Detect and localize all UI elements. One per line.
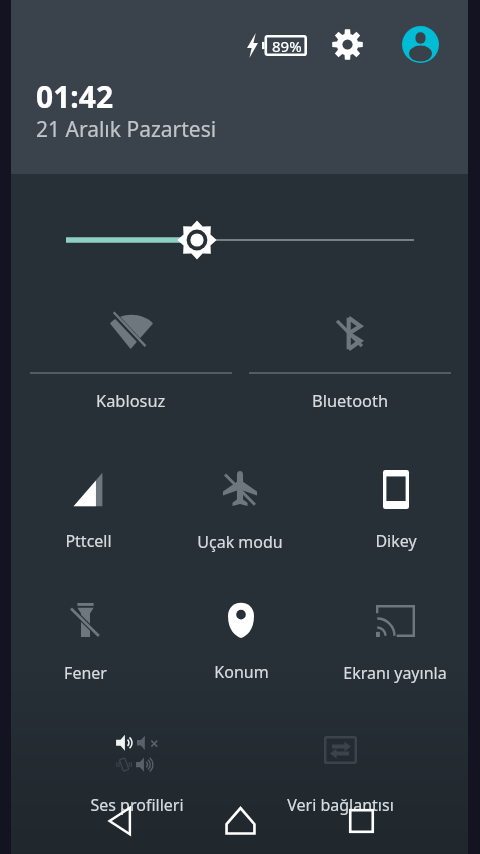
button[interactable]: Fener — [5, 586, 165, 690]
staticText: Konum — [214, 661, 269, 683]
staticText: 89% — [272, 36, 302, 56]
button[interactable]: User profile — [397, 21, 444, 68]
button[interactable]: 01:42 — [36, 76, 236, 146]
button[interactable]: Dikey — [316, 455, 476, 559]
staticText: Fener — [64, 662, 107, 684]
button[interactable]: Ekranı yayınla — [315, 587, 475, 691]
button[interactable]: Wi-Fi, off — [30, 300, 232, 412]
button[interactable]: Konum — [161, 586, 321, 690]
button[interactable]: Brightness slider — [40, 216, 440, 264]
staticText: Uçak modu — [197, 531, 283, 553]
staticText: Kablosuz — [96, 389, 166, 411]
staticText: Dikey — [375, 530, 417, 552]
staticText: Pttcell — [65, 530, 112, 552]
staticText: Ses profilleri — [90, 794, 184, 816]
button[interactable]: Battery 89 percent, charging — [240, 22, 316, 68]
button[interactable]: Veri bağlantısı — [260, 716, 420, 820]
button[interactable]: Pttcell — [8, 455, 168, 559]
staticText: Bluetooth — [312, 389, 389, 411]
button[interactable]: Settings — [324, 21, 371, 68]
button[interactable]: Ses profilleri — [57, 719, 217, 823]
staticText: 01:42 — [36, 76, 114, 117]
staticText: 21 Aralık Pazartesi — [36, 115, 217, 144]
button[interactable]: Home — [200, 793, 280, 847]
staticText: Veri bağlantısı — [287, 794, 394, 816]
button[interactable]: Back — [80, 794, 160, 848]
button[interactable]: Bluetooth, off — [249, 300, 451, 412]
button[interactable]: Uçak modu — [160, 455, 320, 559]
staticText: Ekranı yayınla — [343, 662, 447, 684]
button[interactable]: Recent apps — [321, 794, 401, 848]
